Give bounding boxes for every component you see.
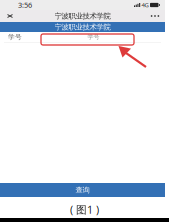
staticText: 3:56 (18, 0, 32, 10)
button[interactable]: 更多 (145, 10, 165, 22)
staticText: 宁波职业技术学院 (54, 22, 110, 32)
button[interactable]: 查询 (0, 183, 165, 197)
staticText: 宁波职业技术学院 (54, 11, 110, 21)
staticText: 查询 (75, 185, 89, 195)
staticText: 学号 (8, 33, 22, 41)
staticText: ( 图1 ) (70, 202, 99, 217)
staticText: 学号 (87, 33, 99, 41)
button[interactable]: 关闭 (0, 10, 20, 22)
staticText: 4G (142, 1, 149, 9)
